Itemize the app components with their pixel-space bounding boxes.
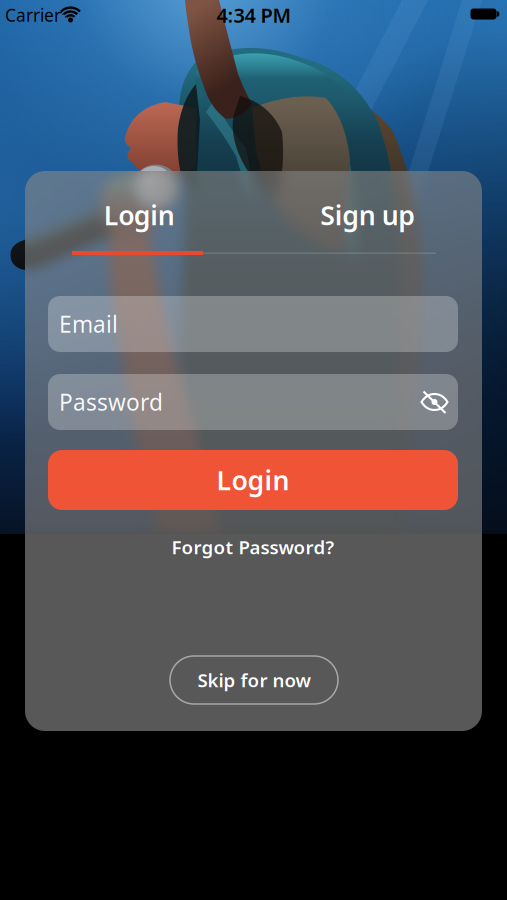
button[interactable]: Login xyxy=(48,450,458,510)
staticText: 4:34 PM xyxy=(216,2,291,28)
button[interactable]: Show password xyxy=(419,389,449,415)
button[interactable]: Skip for now xyxy=(170,656,338,704)
button[interactable]: Login xyxy=(104,197,175,233)
staticText: Password xyxy=(59,387,163,417)
button[interactable]: Forgot Password? xyxy=(171,535,334,559)
staticText: Forgot Password? xyxy=(171,535,334,559)
button[interactable]: Sign up xyxy=(320,197,415,233)
staticText: Skip for now xyxy=(197,668,310,692)
staticText: Login xyxy=(104,197,175,233)
staticText: Carrier xyxy=(5,3,61,26)
staticText: Login xyxy=(216,462,289,498)
staticText: Sign up xyxy=(320,197,415,233)
staticText: Email xyxy=(59,309,118,339)
